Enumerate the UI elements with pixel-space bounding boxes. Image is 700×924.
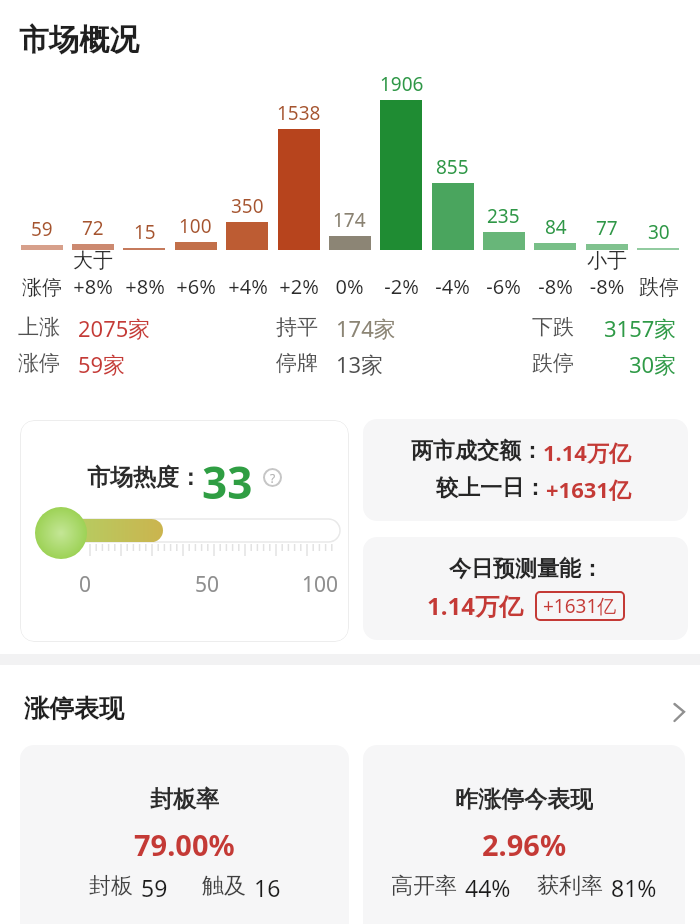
staticText: -2% (384, 273, 419, 300)
staticText: +4% (228, 273, 268, 300)
staticText: -4% (435, 273, 470, 300)
staticText: 获利率 (537, 872, 603, 900)
staticText: 高开率 (391, 872, 457, 900)
staticText: 涨停 (18, 350, 60, 376)
staticText: +2% (279, 273, 319, 300)
staticText: 1.14万亿 (427, 589, 523, 622)
staticText: 跌停 (639, 275, 679, 300)
staticText: 30家 (629, 349, 677, 376)
staticText: 1.14万亿 (543, 437, 631, 467)
button[interactable]: 市场热度： (20, 420, 349, 642)
button[interactable]: 两市成交额： (363, 419, 688, 521)
staticText: 上涨 (18, 314, 60, 340)
staticText: 0% (335, 273, 364, 300)
staticText: 15 (134, 219, 156, 244)
staticText: 174 (333, 207, 366, 232)
staticText: -8% (538, 273, 573, 300)
staticText: 今日预测量能： (449, 555, 603, 583)
staticText: +1631亿 (543, 593, 617, 619)
button[interactable]: 今日预测量能： (363, 537, 688, 640)
staticText: 市场概况 (19, 21, 139, 59)
staticText: 81% (611, 872, 657, 900)
staticText: 大于 +8% (73, 248, 113, 300)
staticText: 2075家 (78, 313, 151, 340)
staticText: 涨停 (22, 275, 62, 300)
staticText: 72 (82, 215, 104, 240)
staticText: 0 (79, 570, 92, 596)
staticText: 下跌 (532, 314, 574, 340)
button[interactable]: 封板率 (20, 745, 349, 924)
staticText: 59家 (78, 349, 126, 376)
staticText: 100 (179, 213, 212, 238)
staticText: 59 (141, 872, 168, 900)
staticText: 较上一日： (436, 474, 546, 502)
staticText: 59 (31, 216, 53, 241)
staticText: 市场热度： (87, 463, 202, 492)
staticText: 174家 (336, 313, 396, 340)
staticText: 跌停 (532, 350, 574, 376)
staticText: 1906 (380, 71, 424, 96)
staticText: +1631亿 (546, 474, 631, 504)
staticText: 84 (545, 214, 567, 239)
staticText: 持平 (276, 314, 318, 340)
staticText: 350 (231, 193, 264, 218)
staticText: 33 (202, 452, 253, 502)
staticText: +6% (176, 273, 216, 300)
button[interactable]: 昨涨停今表现 (363, 745, 685, 924)
staticText: 50 (195, 570, 220, 596)
staticText: 昨涨停今表现 (455, 785, 593, 813)
staticText: ? (270, 470, 276, 486)
button[interactable] (668, 700, 688, 724)
staticText: 3157家 (604, 313, 677, 340)
staticText: 2.96% (482, 825, 567, 857)
staticText: 79.00% (134, 825, 235, 857)
staticText: +8% (125, 273, 165, 300)
staticText: 封板率 (150, 785, 219, 813)
staticText: 小于 -8% (587, 248, 627, 300)
staticText: 1538 (277, 100, 321, 125)
staticText: 855 (436, 154, 469, 179)
staticText: 涨停表现 (24, 693, 124, 724)
staticText: 30 (648, 219, 670, 244)
staticText: 触及 (202, 872, 246, 900)
staticText: 235 (487, 203, 520, 228)
staticText: 16 (254, 872, 281, 900)
staticText: 封板 (89, 872, 133, 900)
staticText: 停牌 (276, 350, 318, 376)
staticText: 两市成交额： (411, 437, 543, 465)
staticText: 77 (596, 215, 618, 240)
staticText: 100 (302, 570, 339, 596)
staticText: -6% (486, 273, 521, 300)
staticText: 44% (465, 872, 511, 900)
staticText: 13家 (336, 349, 384, 376)
